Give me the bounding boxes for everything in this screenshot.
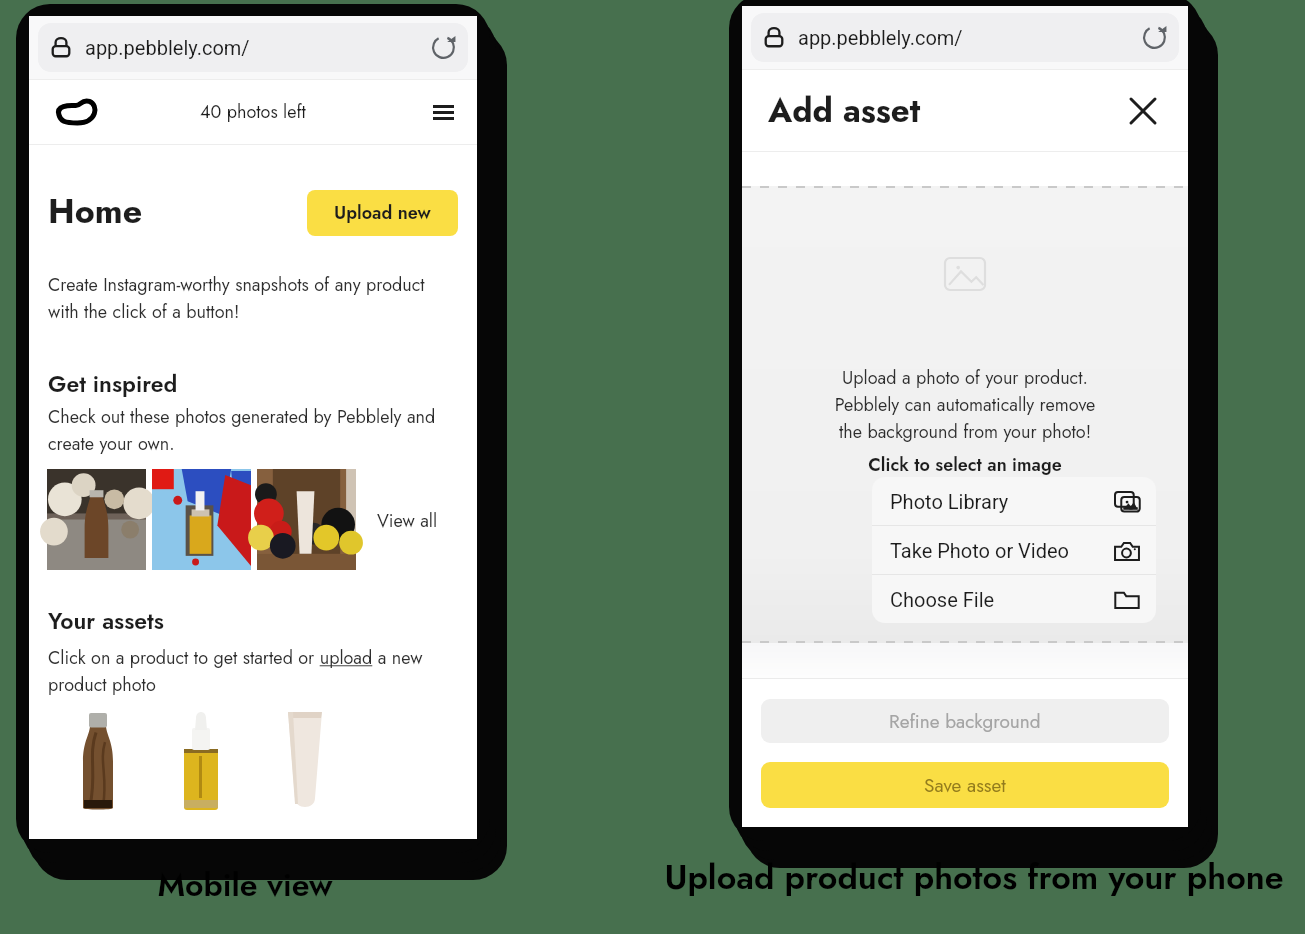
staticText: app.pebblely.com/ (798, 26, 963, 49)
staticText: Home (48, 187, 143, 236)
staticText: Click to select an image (742, 452, 1188, 478)
staticText: Your assets (48, 604, 164, 637)
staticText: Take Photo or Video (890, 539, 1070, 562)
button[interactable]: Refine background (761, 699, 1169, 743)
button[interactable] (253, 704, 357, 814)
other: Pebblely (55, 96, 98, 126)
staticText: Mobile view (43, 862, 447, 908)
staticText: Add asset (768, 87, 921, 135)
button[interactable]: Close (1126, 94, 1160, 128)
other: Reload (1143, 26, 1166, 49)
staticText: Choose File (890, 588, 995, 611)
other: Secure (765, 26, 783, 49)
button[interactable]: Pebblely (55, 96, 98, 126)
other: Take Photo or Video (1114, 540, 1140, 561)
button[interactable]: View all (347, 508, 467, 534)
staticText: app.pebblely.com/ (85, 36, 250, 59)
button[interactable] (149, 704, 253, 814)
button[interactable]: Photo Library (872, 477, 1156, 525)
other: Secure (52, 36, 70, 59)
button[interactable] (47, 469, 146, 570)
other: Choose File (1114, 589, 1140, 610)
staticText: Check out these photos generated by Pebb… (48, 404, 452, 457)
staticText: 40 photos left (200, 99, 306, 125)
button[interactable]: Save asset (761, 762, 1169, 808)
staticText: Save asset (924, 772, 1006, 799)
staticText: Create Instagram-worthy snapshots of any… (48, 272, 452, 325)
other: Photo Library (1114, 491, 1140, 512)
button[interactable]: Take Photo or Video (872, 526, 1156, 574)
button[interactable] (152, 469, 251, 570)
button[interactable] (257, 469, 356, 570)
button[interactable]: Choose File (872, 575, 1156, 623)
button[interactable]: Menu (429, 101, 458, 124)
button[interactable] (46, 704, 150, 814)
staticText: Upload product photos from your phone (634, 853, 1305, 902)
other: Reload (432, 36, 455, 59)
button[interactable]: Upload new (307, 190, 458, 236)
staticText: Refine background (889, 708, 1041, 735)
staticText: Photo Library (890, 490, 1009, 513)
staticText: Get inspired (48, 367, 178, 400)
staticText: Upload new (334, 200, 431, 226)
staticText: Click on a product to get started or upl… (48, 645, 452, 698)
staticText: Upload a photo of your product. Pebblely… (742, 365, 1188, 445)
